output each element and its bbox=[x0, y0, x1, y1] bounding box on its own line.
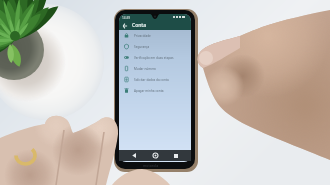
button[interactable]: Privacidade bbox=[119, 30, 191, 41]
button[interactable]: Segurança bbox=[119, 41, 191, 52]
staticText: Mudar número bbox=[134, 67, 156, 71]
staticText: motorola bbox=[143, 163, 159, 168]
staticText: 14:39 bbox=[122, 16, 131, 20]
staticText: Solicitar dados da conta bbox=[134, 78, 169, 82]
staticText: Apagar minha conta bbox=[134, 89, 164, 93]
staticText: Privacidade bbox=[134, 34, 151, 38]
button[interactable]: Apagar minha conta bbox=[119, 85, 191, 96]
button[interactable]: Mudar número bbox=[119, 63, 191, 74]
button[interactable]: Recents bbox=[170, 150, 181, 161]
button[interactable]: Solicitar dados da conta bbox=[119, 74, 191, 85]
staticText: Verificação em duas etapas bbox=[134, 56, 174, 60]
other: Back bbox=[122, 23, 128, 29]
button[interactable]: Verificação em duas etapas bbox=[119, 52, 191, 63]
button[interactable]: Home bbox=[150, 150, 161, 161]
staticText: Conta bbox=[132, 22, 147, 29]
button[interactable]: Back bbox=[129, 150, 140, 161]
button[interactable]: Back bbox=[119, 21, 191, 30]
staticText: Segurança bbox=[134, 45, 150, 49]
